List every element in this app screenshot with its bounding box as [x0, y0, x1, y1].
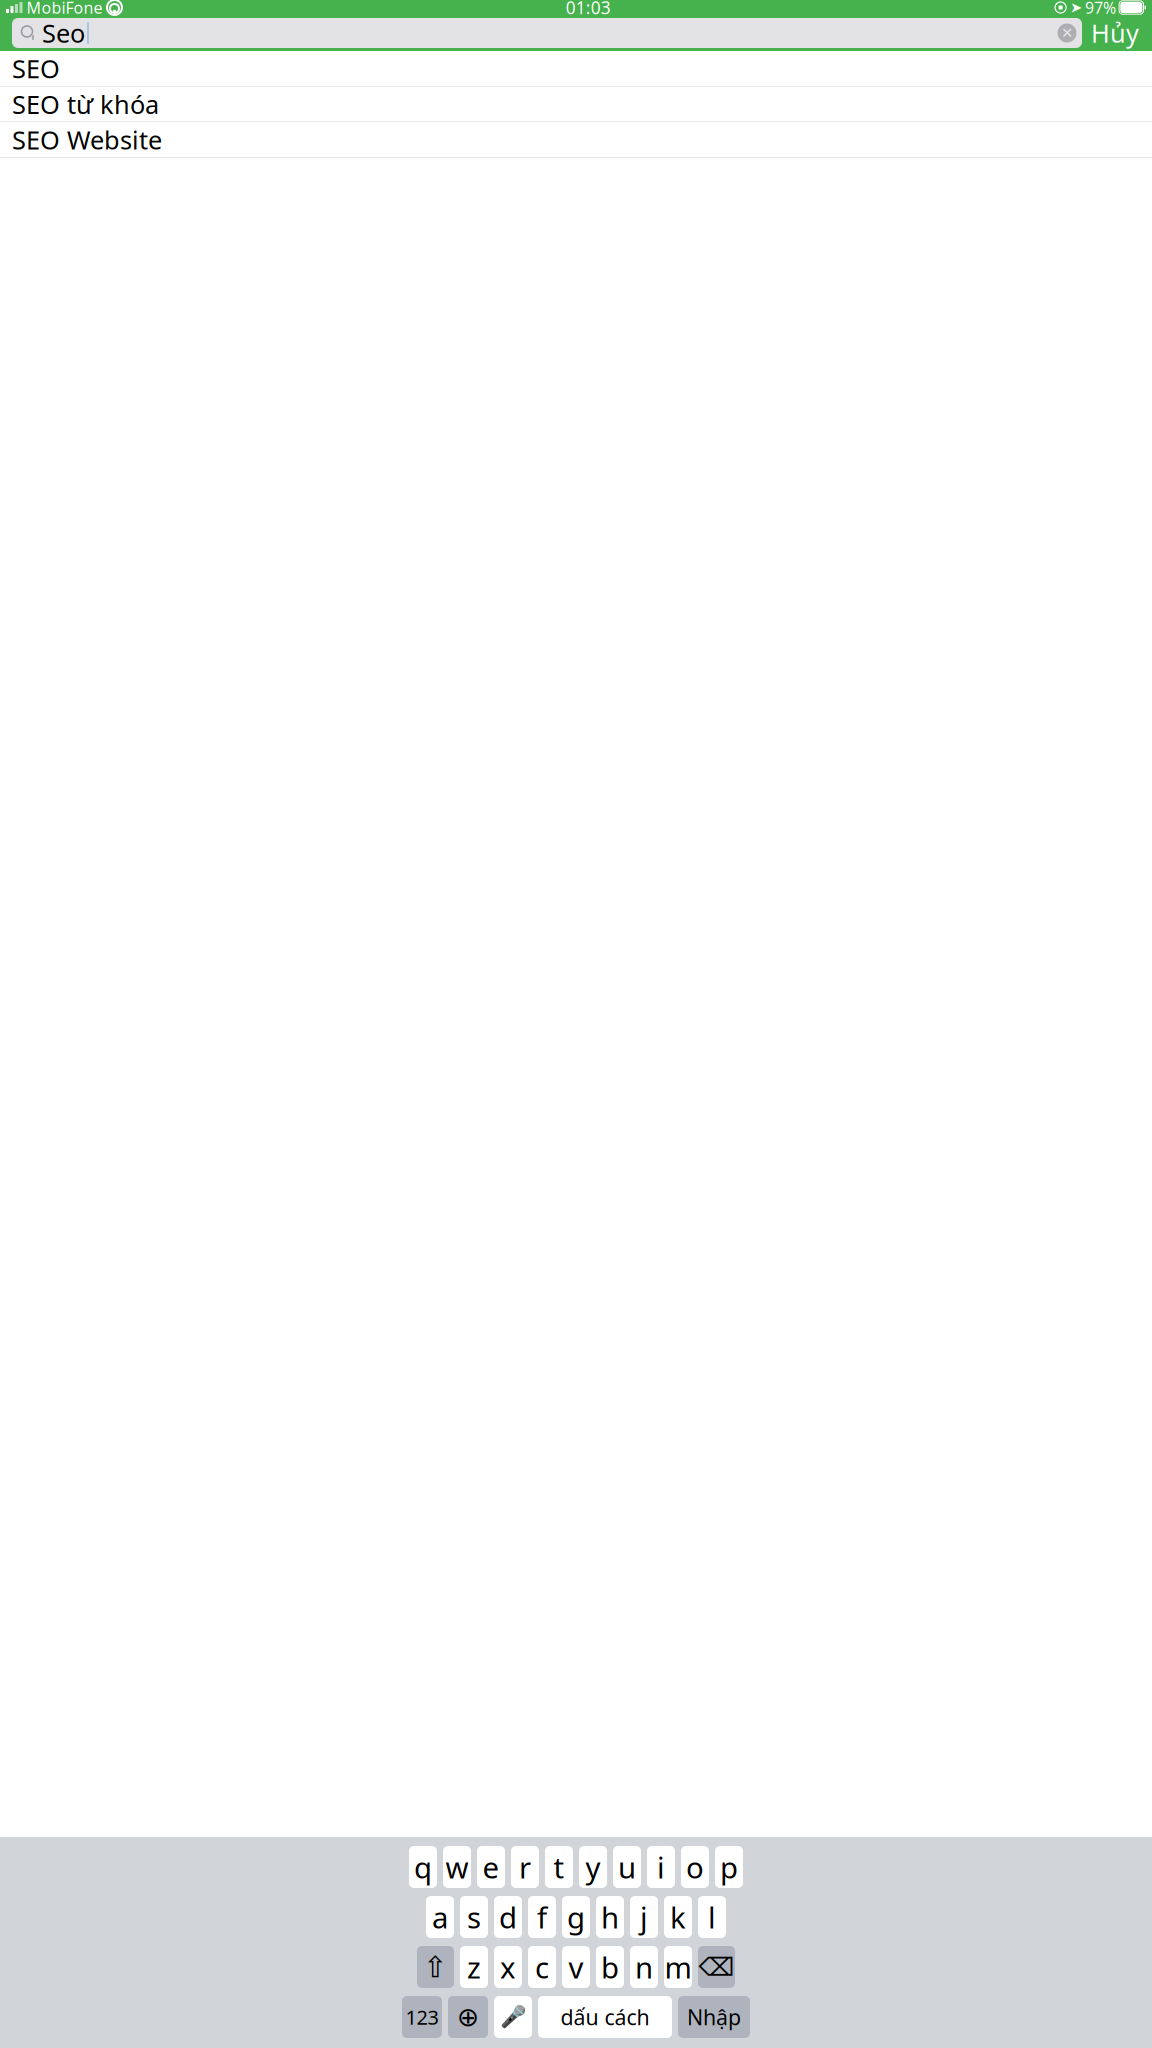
- staticText: y: [585, 1847, 600, 1886]
- staticText: b: [601, 1947, 619, 1986]
- button[interactable]: Shift: [417, 1946, 454, 1988]
- button[interactable]: r: [511, 1846, 539, 1888]
- staticText: r: [519, 1847, 531, 1886]
- button[interactable]: s: [460, 1896, 488, 1938]
- staticText: SEO từ khóa: [12, 87, 159, 121]
- staticText: e: [482, 1847, 499, 1886]
- button[interactable]: Hủy: [1082, 15, 1148, 51]
- staticText: h: [601, 1897, 619, 1936]
- button[interactable]: w: [443, 1846, 471, 1888]
- button[interactable]: q: [409, 1846, 437, 1888]
- button[interactable]: p: [715, 1846, 743, 1888]
- button[interactable]: x: [494, 1946, 522, 1988]
- staticText: ⇧: [423, 1950, 448, 1984]
- button[interactable]: SEO từ khóa: [0, 87, 1152, 122]
- button[interactable]: Dictate: [494, 1996, 532, 2038]
- button[interactable]: h: [596, 1896, 624, 1938]
- button[interactable]: 123: [402, 1996, 442, 2038]
- staticText: w: [445, 1847, 468, 1886]
- staticText: 🎤: [499, 2005, 526, 2029]
- staticText: p: [720, 1847, 738, 1886]
- staticText: n: [635, 1947, 653, 1986]
- button[interactable]: t: [545, 1846, 573, 1888]
- staticText: ⌫: [698, 1953, 734, 1981]
- button[interactable]: a: [426, 1896, 454, 1938]
- staticText: ✕: [1061, 25, 1073, 41]
- button[interactable]: i: [647, 1846, 675, 1888]
- button[interactable]: z: [460, 1946, 488, 1988]
- staticText: k: [670, 1897, 686, 1936]
- staticText: l: [708, 1897, 716, 1936]
- staticText: dấu cách: [560, 2003, 649, 2031]
- button[interactable]: e: [477, 1846, 505, 1888]
- button[interactable]: k: [664, 1896, 692, 1938]
- staticText: u: [618, 1847, 636, 1886]
- staticText: 123: [405, 2004, 438, 2030]
- button[interactable]: g: [562, 1896, 590, 1938]
- staticText: 01:03: [566, 0, 611, 19]
- staticText: ➤: [1070, 0, 1082, 16]
- staticText: i: [657, 1847, 665, 1886]
- button[interactable]: y: [579, 1846, 607, 1888]
- staticText: f: [537, 1897, 547, 1936]
- button[interactable]: dấu cách: [538, 1996, 672, 2038]
- staticText: Seo: [42, 16, 85, 50]
- staticText: Nhập: [687, 2003, 741, 2031]
- staticText: m: [664, 1947, 691, 1986]
- staticText: ⊕: [457, 2002, 479, 2032]
- staticText: SEO: [12, 52, 60, 85]
- staticText: o: [686, 1847, 704, 1886]
- button[interactable]: l: [698, 1896, 726, 1938]
- staticText: 97%: [1085, 0, 1116, 18]
- button[interactable]: d: [494, 1896, 522, 1938]
- button[interactable]: n: [630, 1946, 658, 1988]
- staticText: j: [640, 1897, 648, 1936]
- button[interactable]: Next keyboard: [448, 1996, 488, 2038]
- staticText: s: [467, 1897, 481, 1936]
- button[interactable]: Clear text: [1052, 18, 1082, 48]
- button[interactable]: o: [681, 1846, 709, 1888]
- staticText: d: [499, 1897, 517, 1936]
- button[interactable]: u: [613, 1846, 641, 1888]
- button[interactable]: c: [528, 1946, 556, 1988]
- button[interactable]: Nhập: [678, 1996, 750, 2038]
- staticText: x: [500, 1947, 516, 1986]
- staticText: q: [414, 1847, 432, 1886]
- button[interactable]: j: [630, 1896, 658, 1938]
- button[interactable]: SEO: [0, 51, 1152, 87]
- button[interactable]: Delete: [698, 1946, 735, 1988]
- staticText: t: [553, 1847, 564, 1886]
- button[interactable]: f: [528, 1896, 556, 1938]
- staticText: v: [568, 1947, 583, 1986]
- staticText: Hủy: [1091, 16, 1139, 50]
- staticText: z: [467, 1947, 481, 1986]
- button[interactable]: v: [562, 1946, 590, 1988]
- button[interactable]: SEO Website: [0, 122, 1152, 158]
- button[interactable]: b: [596, 1946, 624, 1988]
- button[interactable]: m: [664, 1946, 692, 1988]
- staticText: c: [535, 1947, 549, 1986]
- staticText: a: [432, 1897, 448, 1936]
- staticText: g: [567, 1897, 585, 1936]
- staticText: MobiFone: [26, 0, 102, 18]
- staticText: SEO Website: [12, 123, 162, 156]
